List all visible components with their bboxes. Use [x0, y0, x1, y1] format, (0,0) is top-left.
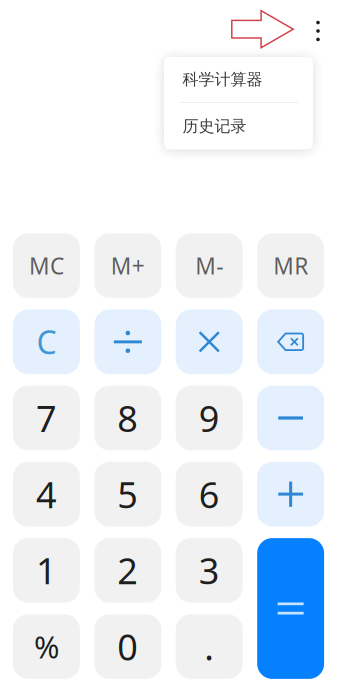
staticText: 5 [117, 470, 138, 518]
staticText: 历史记录 [182, 116, 246, 136]
staticText: 1 [36, 546, 57, 594]
button[interactable]: 4 [13, 462, 80, 526]
button[interactable] [257, 386, 324, 450]
button[interactable]: 2 [94, 538, 161, 603]
button[interactable]: 9 [176, 386, 243, 450]
button[interactable]: MR [257, 233, 324, 298]
staticText: M+ [111, 250, 145, 281]
staticText: 3 [199, 546, 220, 594]
staticText: 6 [199, 470, 220, 518]
staticText: . [204, 623, 214, 670]
staticText: 7 [36, 394, 57, 442]
button[interactable]: C [13, 309, 80, 374]
button[interactable] [94, 309, 161, 374]
button[interactable]: 7 [13, 386, 80, 450]
button[interactable]: 历史记录 [164, 103, 313, 149]
button[interactable]: More options [303, 11, 333, 51]
button[interactable] [257, 462, 324, 526]
button[interactable]: 6 [176, 462, 243, 526]
staticText: 4 [36, 470, 57, 518]
button[interactable]: 1 [13, 538, 80, 603]
button[interactable]: 3 [176, 538, 243, 603]
button[interactable]: 8 [94, 386, 161, 450]
staticText: 9 [199, 394, 220, 442]
button[interactable]: MC [13, 233, 80, 298]
button[interactable]: . [176, 614, 243, 679]
staticText: 0 [117, 623, 138, 670]
button[interactable] [257, 538, 324, 679]
staticText: 科学计算器 [182, 70, 262, 89]
staticText: MR [273, 250, 308, 281]
button[interactable] [176, 309, 243, 374]
staticText: C [36, 321, 56, 363]
staticText: % [34, 626, 59, 667]
button[interactable]: 0 [94, 614, 161, 679]
button[interactable]: 科学计算器 [164, 57, 313, 102]
staticText: M- [195, 250, 223, 281]
button[interactable]: 5 [94, 462, 161, 526]
staticText: MC [29, 250, 64, 281]
staticText: 8 [117, 394, 138, 442]
staticText: 2 [117, 546, 138, 594]
button[interactable]: M- [176, 233, 243, 298]
button[interactable] [257, 309, 324, 374]
button[interactable]: M+ [94, 233, 161, 298]
button[interactable]: % [13, 614, 80, 679]
